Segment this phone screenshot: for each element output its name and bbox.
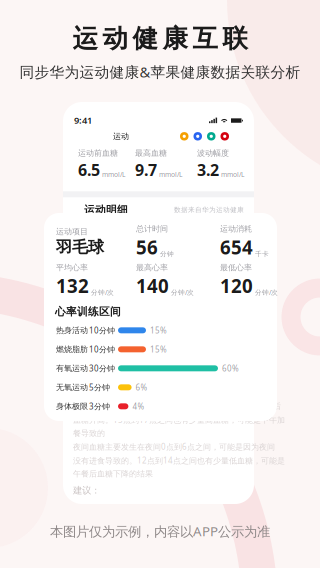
staticText: 10分钟 [89,325,115,336]
staticText: 最高心率 [136,263,168,272]
staticText: 56 [136,235,158,260]
staticText: 没有进食导致的。12点到14点之间也有少量低血糖，可能是 [73,455,285,466]
staticText: mmol/L [221,170,244,179]
staticText: 15% [150,344,167,355]
staticText: 波动幅度 [197,148,229,158]
staticText: 3分钟 [89,401,110,412]
staticText: 4% [132,401,144,412]
staticText: 运动明细 [84,203,128,216]
staticText: 千卡 [255,250,269,258]
staticText: mmol/L [159,170,182,179]
button[interactable]: 心率 [220,132,229,141]
staticText: 分钟/次 [91,288,114,297]
staticText: 点之间，这可能与用户的饮食习惯有关，比如早餐和晚餐后 [73,401,281,411]
staticText: 运动项目 [56,227,88,236]
staticText: 平均心率 [56,263,88,272]
staticText: 最高血糖 [135,148,167,158]
staticText: 140 [136,273,169,298]
staticText: 运动前血糖 [78,148,118,158]
staticText: 血糖升高。15点到17点之间也有少量高血糖，可能是下午加 [73,414,285,425]
staticText: 最低心率 [220,263,252,272]
staticText: 6.5 [78,159,100,180]
staticText: 心率训练区间 [55,305,121,318]
staticText: 运动消耗 [220,224,252,234]
staticText: 9:41 [74,114,92,126]
staticText: 热身活动 [56,325,88,335]
staticText: 羽毛球 [56,237,104,257]
button[interactable]: 站立 [207,132,215,141]
staticText: 15% [150,325,167,336]
staticText: 夜间血糖主要发生在夜间0点到6点之间，可能是因为夜间 [73,441,275,452]
staticText: 燃烧脂肪 [56,344,88,354]
staticText: 有氧运动 [56,363,88,373]
staticText: 身体极限 [56,401,88,411]
staticText: 数据来自华为运动健康 [174,206,244,214]
staticText: 654 [220,235,253,260]
staticText: mmol/L [102,170,125,179]
staticText: 无氧运动 [56,382,88,392]
staticText: 运动 [113,131,129,141]
staticText: 120 [220,273,253,298]
button[interactable]: 锻炼 [193,132,202,141]
staticText: 分钟/次 [255,288,278,297]
staticText: 总计时间 [136,224,168,234]
staticText: 同步华为运动健康&苹果健康数据关联分析 [19,62,300,82]
button[interactable]: 活动 [180,132,188,141]
staticText: 5分钟 [89,382,110,393]
staticText: 30分钟 [89,363,115,374]
staticText: 餐导致的 [73,428,105,438]
staticText: 分钟 [160,250,174,258]
staticText: 6% [136,382,148,393]
staticText: 9.7 [135,159,157,180]
staticText: 运动健康互联 [72,23,247,54]
staticText: 建议： [73,484,100,496]
staticText: 分钟/次 [171,288,194,297]
staticText: 午餐后血糖下降的结果 [73,469,153,479]
staticText: 132 [56,273,89,298]
staticText: 本图片仅为示例，内容以APP公示为准 [50,522,270,540]
staticText: 60% [222,363,239,374]
staticText: 10分钟 [89,344,115,355]
staticText: 3.2 [197,159,219,180]
